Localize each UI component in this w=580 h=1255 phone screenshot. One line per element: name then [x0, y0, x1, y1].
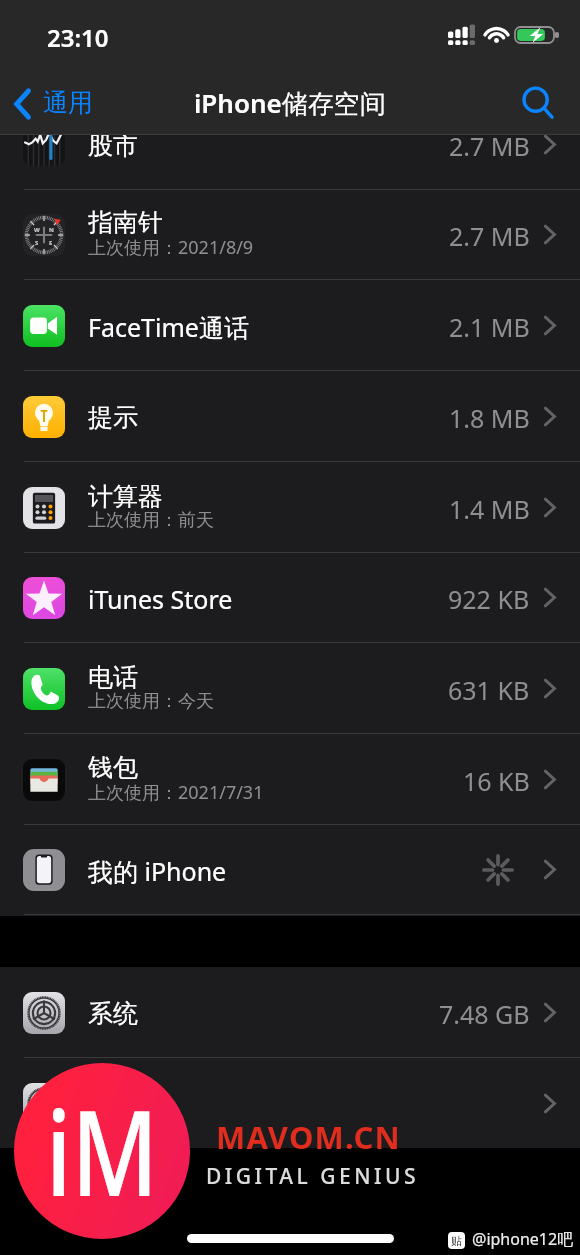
staticText: 电话	[88, 662, 138, 693]
staticText: 16 KB	[463, 764, 530, 798]
staticText: 上次使用：2021/7/31	[88, 780, 264, 805]
staticText: 7.48 GB	[439, 997, 530, 1031]
staticText: @iphone12吧	[472, 1228, 574, 1250]
button[interactable]: 钱包	[0, 734, 580, 825]
button[interactable]: 通用	[13, 88, 93, 119]
staticText: 通用	[43, 87, 93, 118]
staticText: FaceTime通话	[88, 310, 249, 344]
button[interactable]: 系统	[0, 967, 580, 1058]
button[interactable]: Search	[512, 72, 564, 135]
staticText: 股市	[88, 135, 138, 161]
staticText: 钱包	[88, 752, 138, 783]
button[interactable]: W	[0, 189, 580, 280]
button[interactable]: FaceTime通话	[0, 280, 580, 371]
staticText: 922 KB	[448, 582, 530, 616]
staticText: iM	[46, 1070, 159, 1231]
staticText: iTunes Store	[88, 582, 233, 616]
button[interactable]: 计算器	[0, 462, 580, 553]
button[interactable]: 电话	[0, 643, 580, 734]
staticText: 贴	[451, 1234, 462, 1248]
button[interactable]	[0, 1058, 580, 1148]
staticText: 系统	[88, 998, 138, 1029]
staticText: 2.7 MB	[449, 135, 530, 163]
staticText: 631 KB	[448, 673, 530, 707]
staticText: 我的 iPhone	[88, 854, 227, 888]
staticText: W	[34, 226, 40, 234]
staticText: 1.4 MB	[449, 492, 530, 526]
staticText: S	[35, 239, 39, 247]
staticText: iPhone储存空间	[194, 85, 386, 121]
button[interactable]: 我的 iPhone	[0, 824, 580, 915]
staticText: 2.7 MB	[449, 219, 530, 253]
button[interactable]: iTunes Store	[0, 552, 580, 643]
staticText: 上次使用：前天	[88, 509, 214, 532]
staticText: 上次使用：今天	[88, 690, 214, 713]
button[interactable]: 股市	[0, 135, 580, 190]
button[interactable]: 提示	[0, 371, 580, 462]
staticText: DIGITAL GENIUS	[206, 1162, 419, 1191]
staticText: 计算器	[88, 481, 163, 512]
staticText: 2.1 MB	[449, 310, 530, 344]
staticText: 上次使用：2021/8/9	[88, 235, 254, 260]
staticText: 提示	[88, 402, 138, 433]
staticText: MAVOM.CN	[216, 1116, 401, 1158]
staticText: 指南针	[88, 207, 163, 238]
staticText: E	[49, 239, 53, 247]
staticText: 23:10	[47, 21, 109, 54]
staticText: N	[49, 226, 54, 234]
staticText: 1.8 MB	[449, 401, 530, 435]
